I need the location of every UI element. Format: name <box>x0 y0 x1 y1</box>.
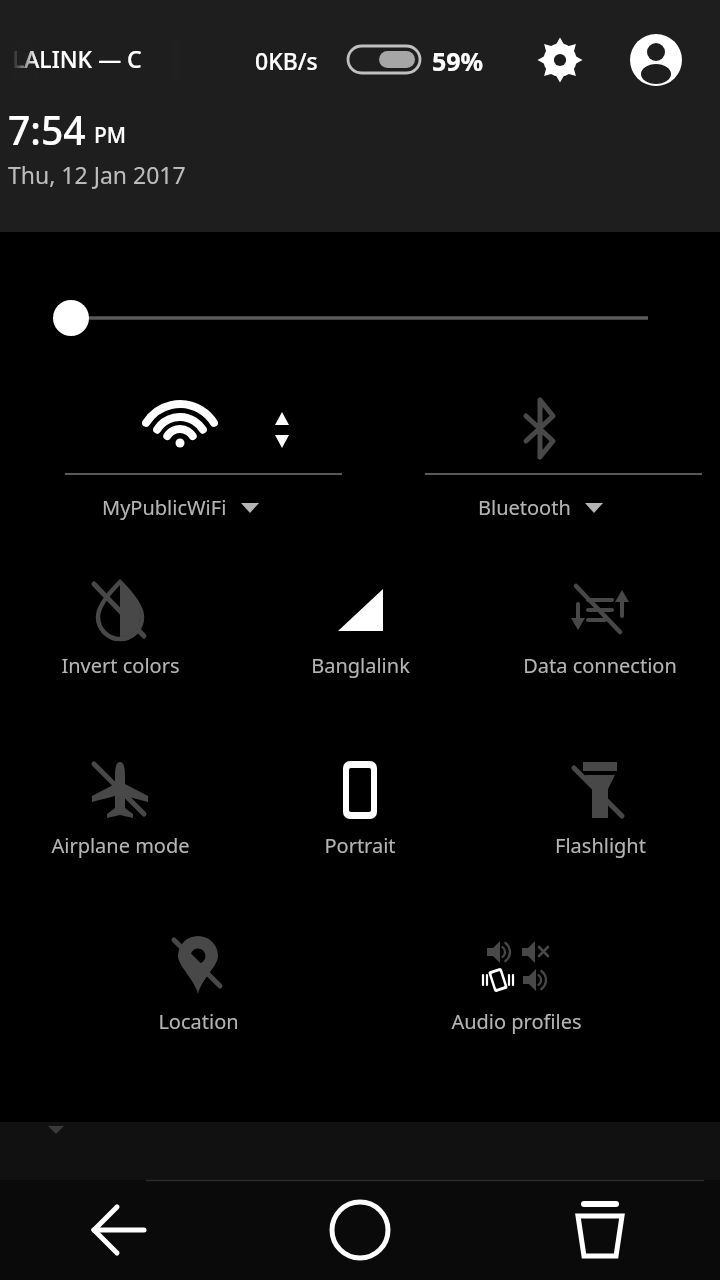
staticText: Audio profiles <box>451 1008 582 1035</box>
staticText: MyPublicWiFi <box>102 494 227 521</box>
staticText: Location <box>158 1008 239 1035</box>
staticText: PM <box>94 121 127 150</box>
button[interactable]: Recents <box>480 1180 720 1280</box>
button[interactable]: Portrait <box>240 742 480 918</box>
button[interactable]: Brightness <box>0 278 720 358</box>
staticText: 59% <box>432 44 484 78</box>
button[interactable]: MyPublicWiFi <box>0 380 360 545</box>
staticText: LALINK — C <box>12 43 142 74</box>
staticText: Banglalink <box>311 652 410 679</box>
button[interactable]: Location <box>78 918 318 1094</box>
staticText: 0KB/s <box>255 45 318 76</box>
button[interactable]: User profile <box>628 32 684 88</box>
button[interactable]: Airplane mode <box>0 742 240 918</box>
staticText: 7:54 <box>8 103 86 156</box>
button[interactable]: Settings <box>532 32 588 88</box>
button[interactable]: Data connection <box>480 562 720 742</box>
staticText: Portrait <box>324 832 396 859</box>
staticText: Bluetooth <box>478 494 571 521</box>
button[interactable]: Bluetooth <box>360 380 720 545</box>
staticText: Data connection <box>523 652 677 679</box>
button[interactable]: Banglalink <box>240 562 480 742</box>
staticText: Thu, 12 Jan 2017 <box>8 159 186 190</box>
staticText: Airplane mode <box>51 832 190 859</box>
button[interactable]: Home <box>240 1180 480 1280</box>
button[interactable]: Flashlight <box>480 742 720 918</box>
button[interactable]: Back <box>0 1180 240 1280</box>
staticText: Flashlight <box>555 832 646 859</box>
button[interactable]: Invert colors <box>0 562 240 742</box>
staticText: Invert colors <box>61 652 180 679</box>
button[interactable]: Audio profiles <box>396 918 636 1094</box>
